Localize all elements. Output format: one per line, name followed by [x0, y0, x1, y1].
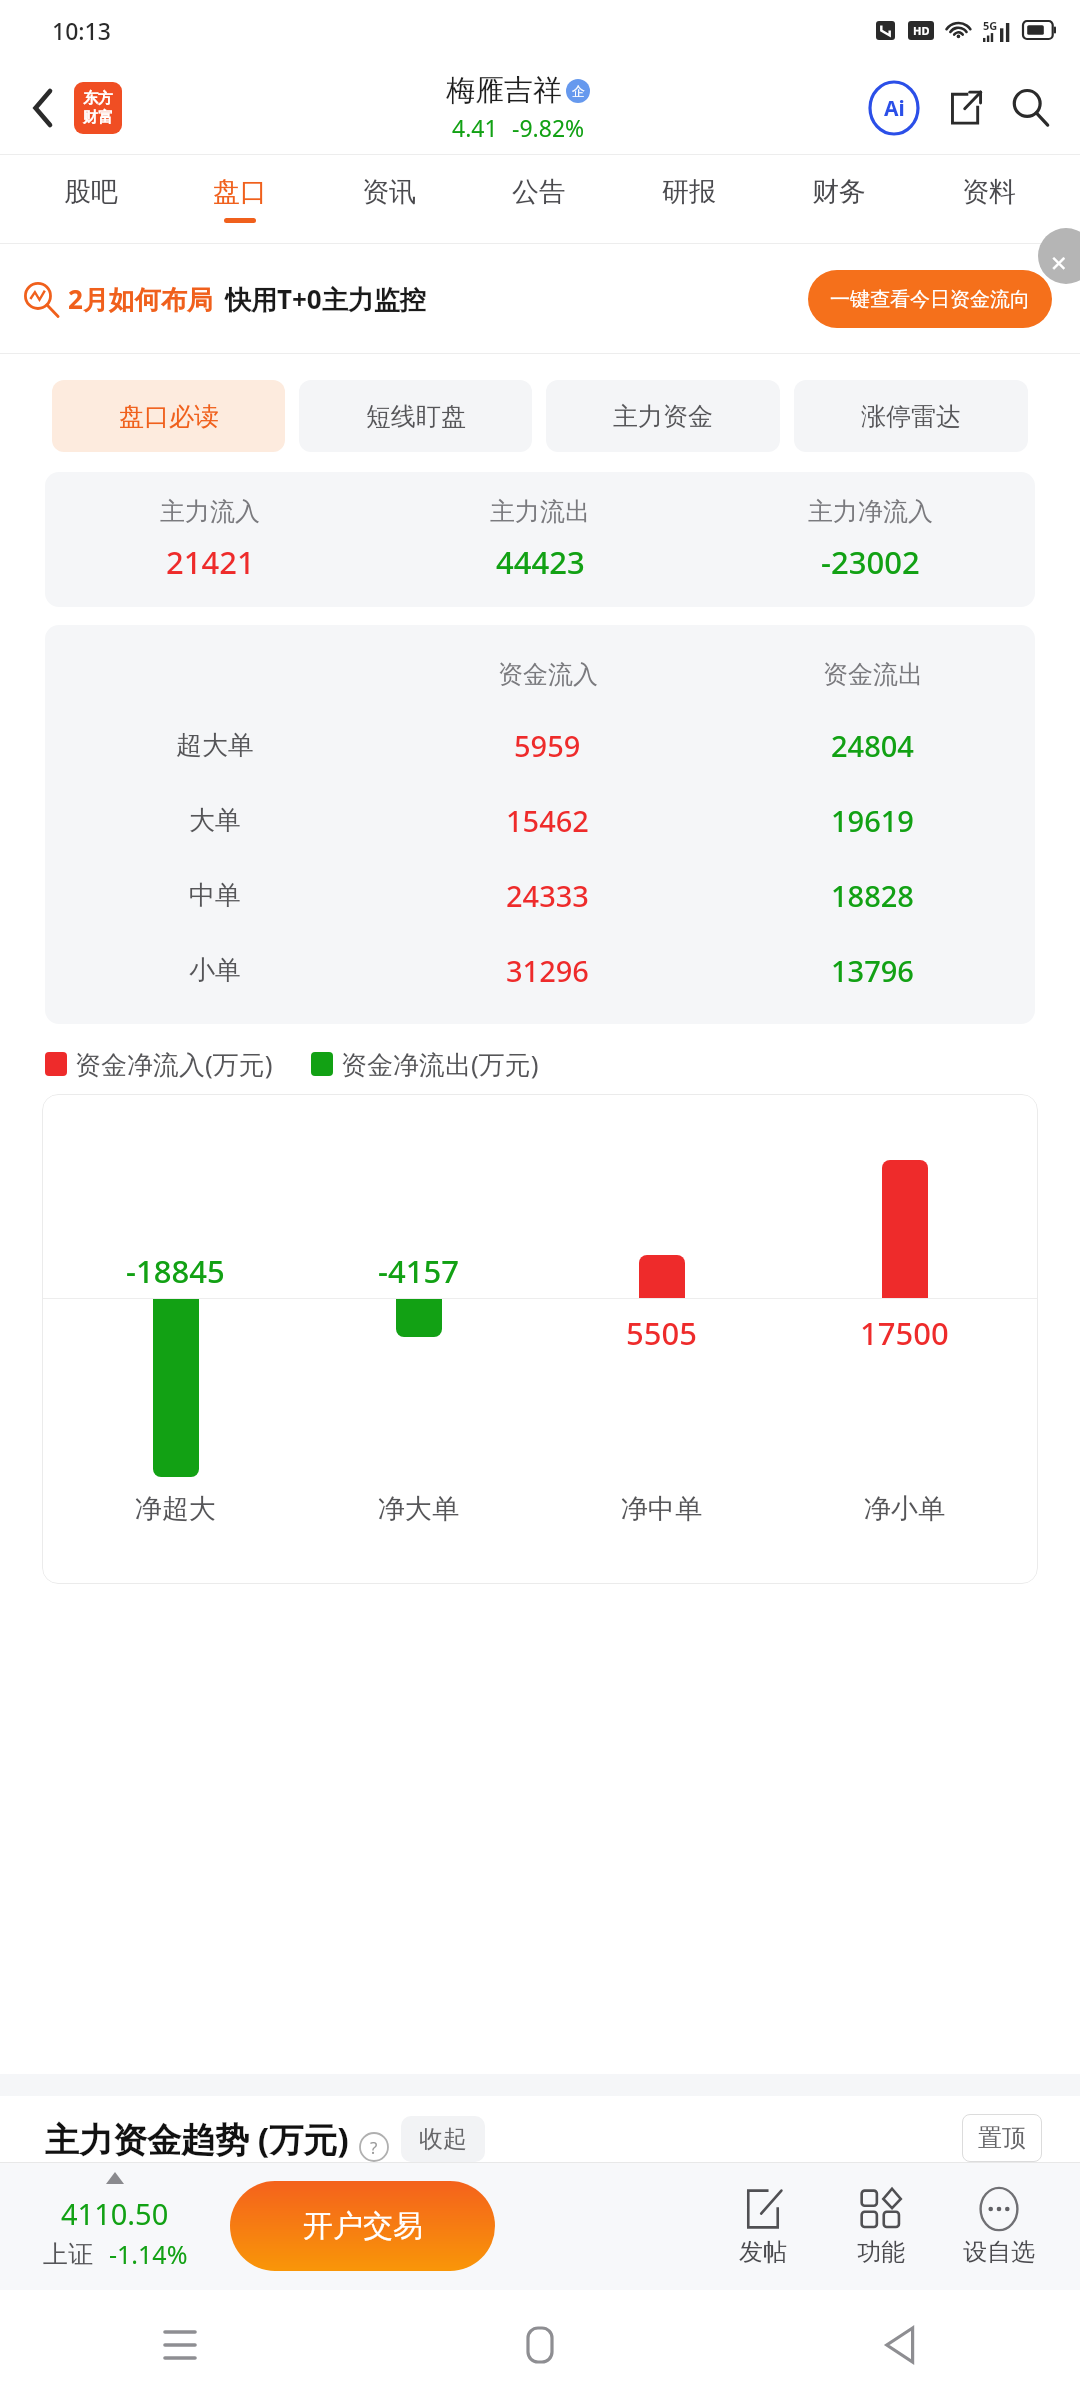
button[interactable]: Home [507, 2312, 573, 2378]
staticText: 净大单 [378, 1492, 459, 1526]
staticText: 梅雁吉祥 [446, 72, 562, 109]
button[interactable]: Share [936, 80, 992, 136]
button[interactable]: Recent apps [147, 2312, 213, 2378]
staticText: 小单 [189, 954, 241, 987]
staticText: 资料 [962, 175, 1016, 209]
button[interactable]: 一键查看今日资金流向 [808, 270, 1052, 328]
staticText: 5959 [514, 726, 581, 765]
button[interactable]: Close banner [1038, 228, 1080, 284]
staticText: 研报 [662, 175, 716, 209]
button[interactable]: AI assistant [866, 80, 922, 136]
button[interactable]: 财务 [764, 155, 914, 243]
staticText: 超大单 [176, 729, 254, 762]
button[interactable]: 研报 [614, 155, 764, 243]
staticText: 资讯 [362, 175, 416, 209]
staticText: ? [370, 2136, 378, 2159]
staticText: -18845 [126, 1250, 225, 1292]
button[interactable]: 股吧 [16, 155, 165, 243]
staticText: 上证 [43, 2239, 93, 2270]
staticText: 31296 [506, 951, 589, 990]
staticText: 置顶 [978, 2123, 1026, 2153]
button[interactable]: 设自选 [940, 2162, 1058, 2290]
staticText: 5505 [626, 1312, 697, 1354]
staticText: ✕ [1050, 252, 1068, 276]
staticText: 4.41 [452, 112, 498, 143]
staticText: 主力净流入 [808, 496, 933, 527]
staticText: 股吧 [64, 175, 118, 209]
staticText: 净超大 [135, 1492, 216, 1526]
staticText: 主力资金趋势 (万元) [45, 2116, 349, 2162]
staticText: 公告 [512, 175, 566, 209]
button[interactable]: 资讯 [314, 155, 464, 243]
staticText: 10:13 [52, 15, 111, 46]
staticText: 2月如何布局 [68, 281, 213, 317]
button[interactable]: 4110.50 [0, 2182, 230, 2271]
button[interactable]: 短线盯盘 [299, 380, 532, 452]
staticText: 21421 [166, 541, 255, 583]
staticText: 涨停雷达 [861, 401, 961, 432]
button[interactable]: 主力资金 [546, 380, 780, 452]
staticText: -9.82% [512, 112, 585, 143]
staticText: -1.14% [109, 2237, 188, 2271]
button[interactable]: 涨停雷达 [794, 380, 1028, 452]
staticText: 资金净流入(万元) [75, 1046, 273, 1082]
button[interactable]: 盘口必读 [52, 380, 285, 452]
staticText: 19619 [831, 801, 914, 840]
button[interactable]: 开户交易 [230, 2181, 495, 2271]
button[interactable]: 资料 [914, 155, 1064, 243]
staticText: 15462 [506, 801, 589, 840]
staticText: -4157 [378, 1250, 459, 1292]
staticText: HD [913, 23, 930, 38]
staticText: 资金流出 [823, 659, 923, 690]
button[interactable]: 功能 [822, 2162, 940, 2290]
staticText: 5G [983, 18, 998, 33]
staticText: 企 [572, 83, 585, 99]
button[interactable]: 公告 [464, 155, 614, 243]
staticText: 主力流出 [490, 496, 590, 527]
staticText: 13796 [831, 951, 914, 990]
staticText: -23002 [821, 541, 920, 583]
staticText: 24804 [831, 726, 914, 765]
button[interactable]: 盘口 [165, 155, 314, 243]
staticText: 44423 [496, 541, 585, 583]
staticText: 盘口必读 [119, 401, 219, 432]
button[interactable]: East Money [74, 82, 122, 134]
staticText: 东方 [83, 89, 113, 108]
staticText: 短线盯盘 [366, 401, 466, 432]
button[interactable]: Back [867, 2312, 933, 2378]
staticText: 资金流入 [498, 659, 598, 690]
staticText: 资金净流出(万元) [341, 1046, 539, 1082]
staticText: 主力流入 [160, 496, 260, 527]
staticText: Ai [884, 94, 905, 123]
button[interactable]: Back [16, 81, 70, 135]
staticText: 设自选 [963, 2237, 1035, 2267]
staticText: 大单 [189, 804, 241, 837]
staticText: 一键查看今日资金流向 [830, 287, 1030, 312]
button[interactable]: 发帖 [704, 2162, 822, 2290]
staticText: 财富 [83, 108, 113, 127]
staticText: 净小单 [864, 1492, 945, 1526]
staticText: 快用T+0主力监控 [225, 281, 426, 317]
button[interactable]: 收起 [401, 2116, 485, 2162]
staticText: 净中单 [621, 1492, 702, 1526]
staticText: 财务 [812, 175, 866, 209]
staticText: 开户交易 [303, 2207, 423, 2245]
staticText: 17500 [860, 1312, 949, 1354]
staticText: 收起 [419, 2124, 467, 2154]
staticText: 24333 [506, 876, 589, 915]
staticText: 盘口 [213, 175, 267, 209]
button[interactable]: 置顶 [962, 2114, 1042, 2162]
staticText: 功能 [857, 2237, 905, 2267]
staticText: 发帖 [739, 2237, 787, 2267]
button[interactable]: Search [1002, 79, 1060, 137]
staticText: 主力资金 [613, 401, 713, 432]
staticText: 18828 [831, 876, 914, 915]
staticText: 中单 [189, 879, 241, 912]
staticText: 4110.50 [61, 2194, 169, 2233]
